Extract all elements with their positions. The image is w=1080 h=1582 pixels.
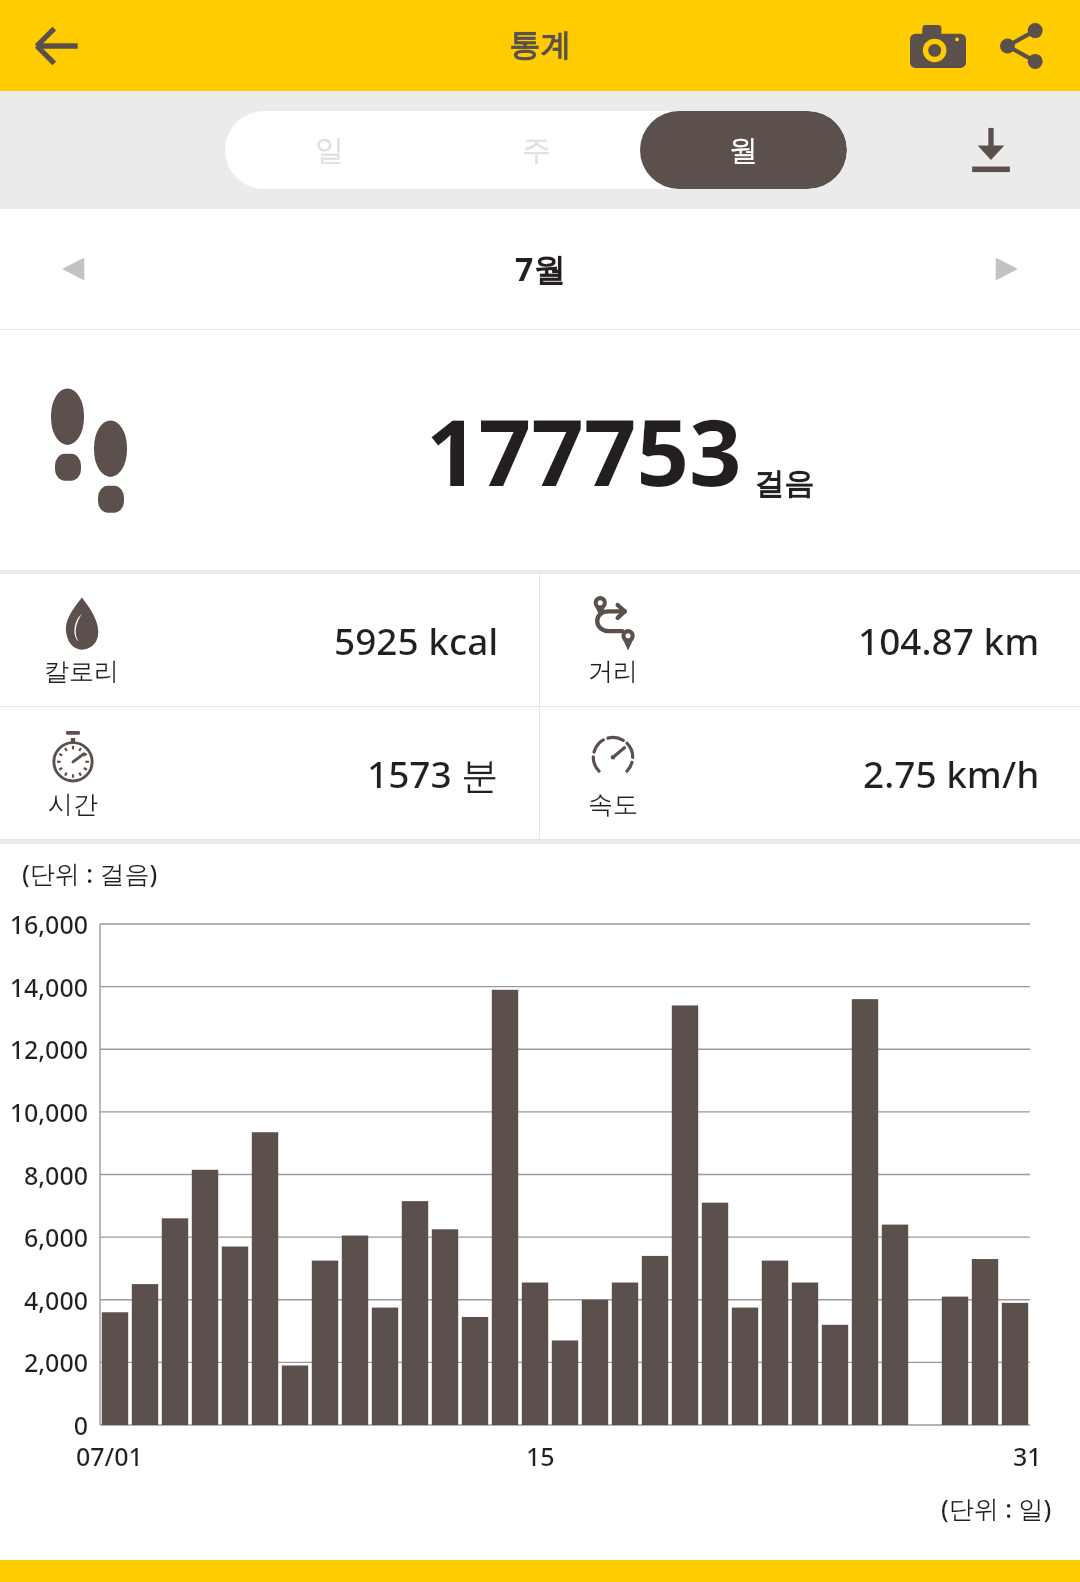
button[interactable]: 속도: [540, 707, 1080, 839]
staticText: 7월: [515, 247, 566, 291]
staticText: 14,000: [0, 970, 88, 1004]
button[interactable]: 월: [640, 111, 847, 189]
staticText: 월: [729, 132, 758, 169]
staticText: (단위 : 걸음): [22, 856, 158, 890]
staticText: 16,000: [0, 907, 88, 941]
staticText: 통계: [509, 26, 571, 65]
staticText: 4,000: [0, 1283, 88, 1317]
staticText: 5925 kcal: [334, 615, 499, 665]
button[interactable]: Camera: [902, 10, 974, 82]
staticText: 주: [522, 132, 551, 169]
button[interactable]: Back: [26, 15, 88, 77]
staticText: 칼로리: [44, 656, 119, 687]
staticText: 6,000: [0, 1220, 88, 1254]
button[interactable]: 시간: [0, 707, 539, 839]
button[interactable]: 일: [225, 111, 433, 189]
button[interactable]: Next month: [976, 240, 1034, 298]
staticText: (단위 : 일): [941, 1491, 1052, 1525]
staticText: 15: [526, 1439, 555, 1473]
staticText: 12,000: [0, 1032, 88, 1066]
button[interactable]: Download: [952, 111, 1030, 189]
button[interactable]: 거리: [540, 574, 1080, 706]
staticText: 시간: [48, 789, 98, 820]
button[interactable]: Share: [986, 10, 1058, 82]
staticText: 일: [315, 132, 344, 169]
staticText: 거리: [588, 656, 638, 687]
staticText: 2,000: [0, 1345, 88, 1379]
staticText: 07/01: [76, 1439, 143, 1473]
staticText: 1573 분: [367, 748, 499, 799]
staticText: 10,000: [0, 1095, 88, 1129]
staticText: 0: [0, 1408, 88, 1442]
staticText: 104.87 km: [858, 615, 1040, 665]
staticText: 2.75 km/h: [863, 748, 1040, 798]
button[interactable]: 주: [433, 111, 640, 189]
staticText: 177753: [426, 388, 742, 513]
button[interactable]: 칼로리: [0, 574, 539, 706]
staticText: 속도: [588, 789, 638, 820]
button[interactable]: Previous month: [46, 240, 104, 298]
staticText: 31: [1013, 1439, 1042, 1473]
staticText: 8,000: [0, 1158, 88, 1192]
staticText: 걸음: [754, 465, 814, 503]
